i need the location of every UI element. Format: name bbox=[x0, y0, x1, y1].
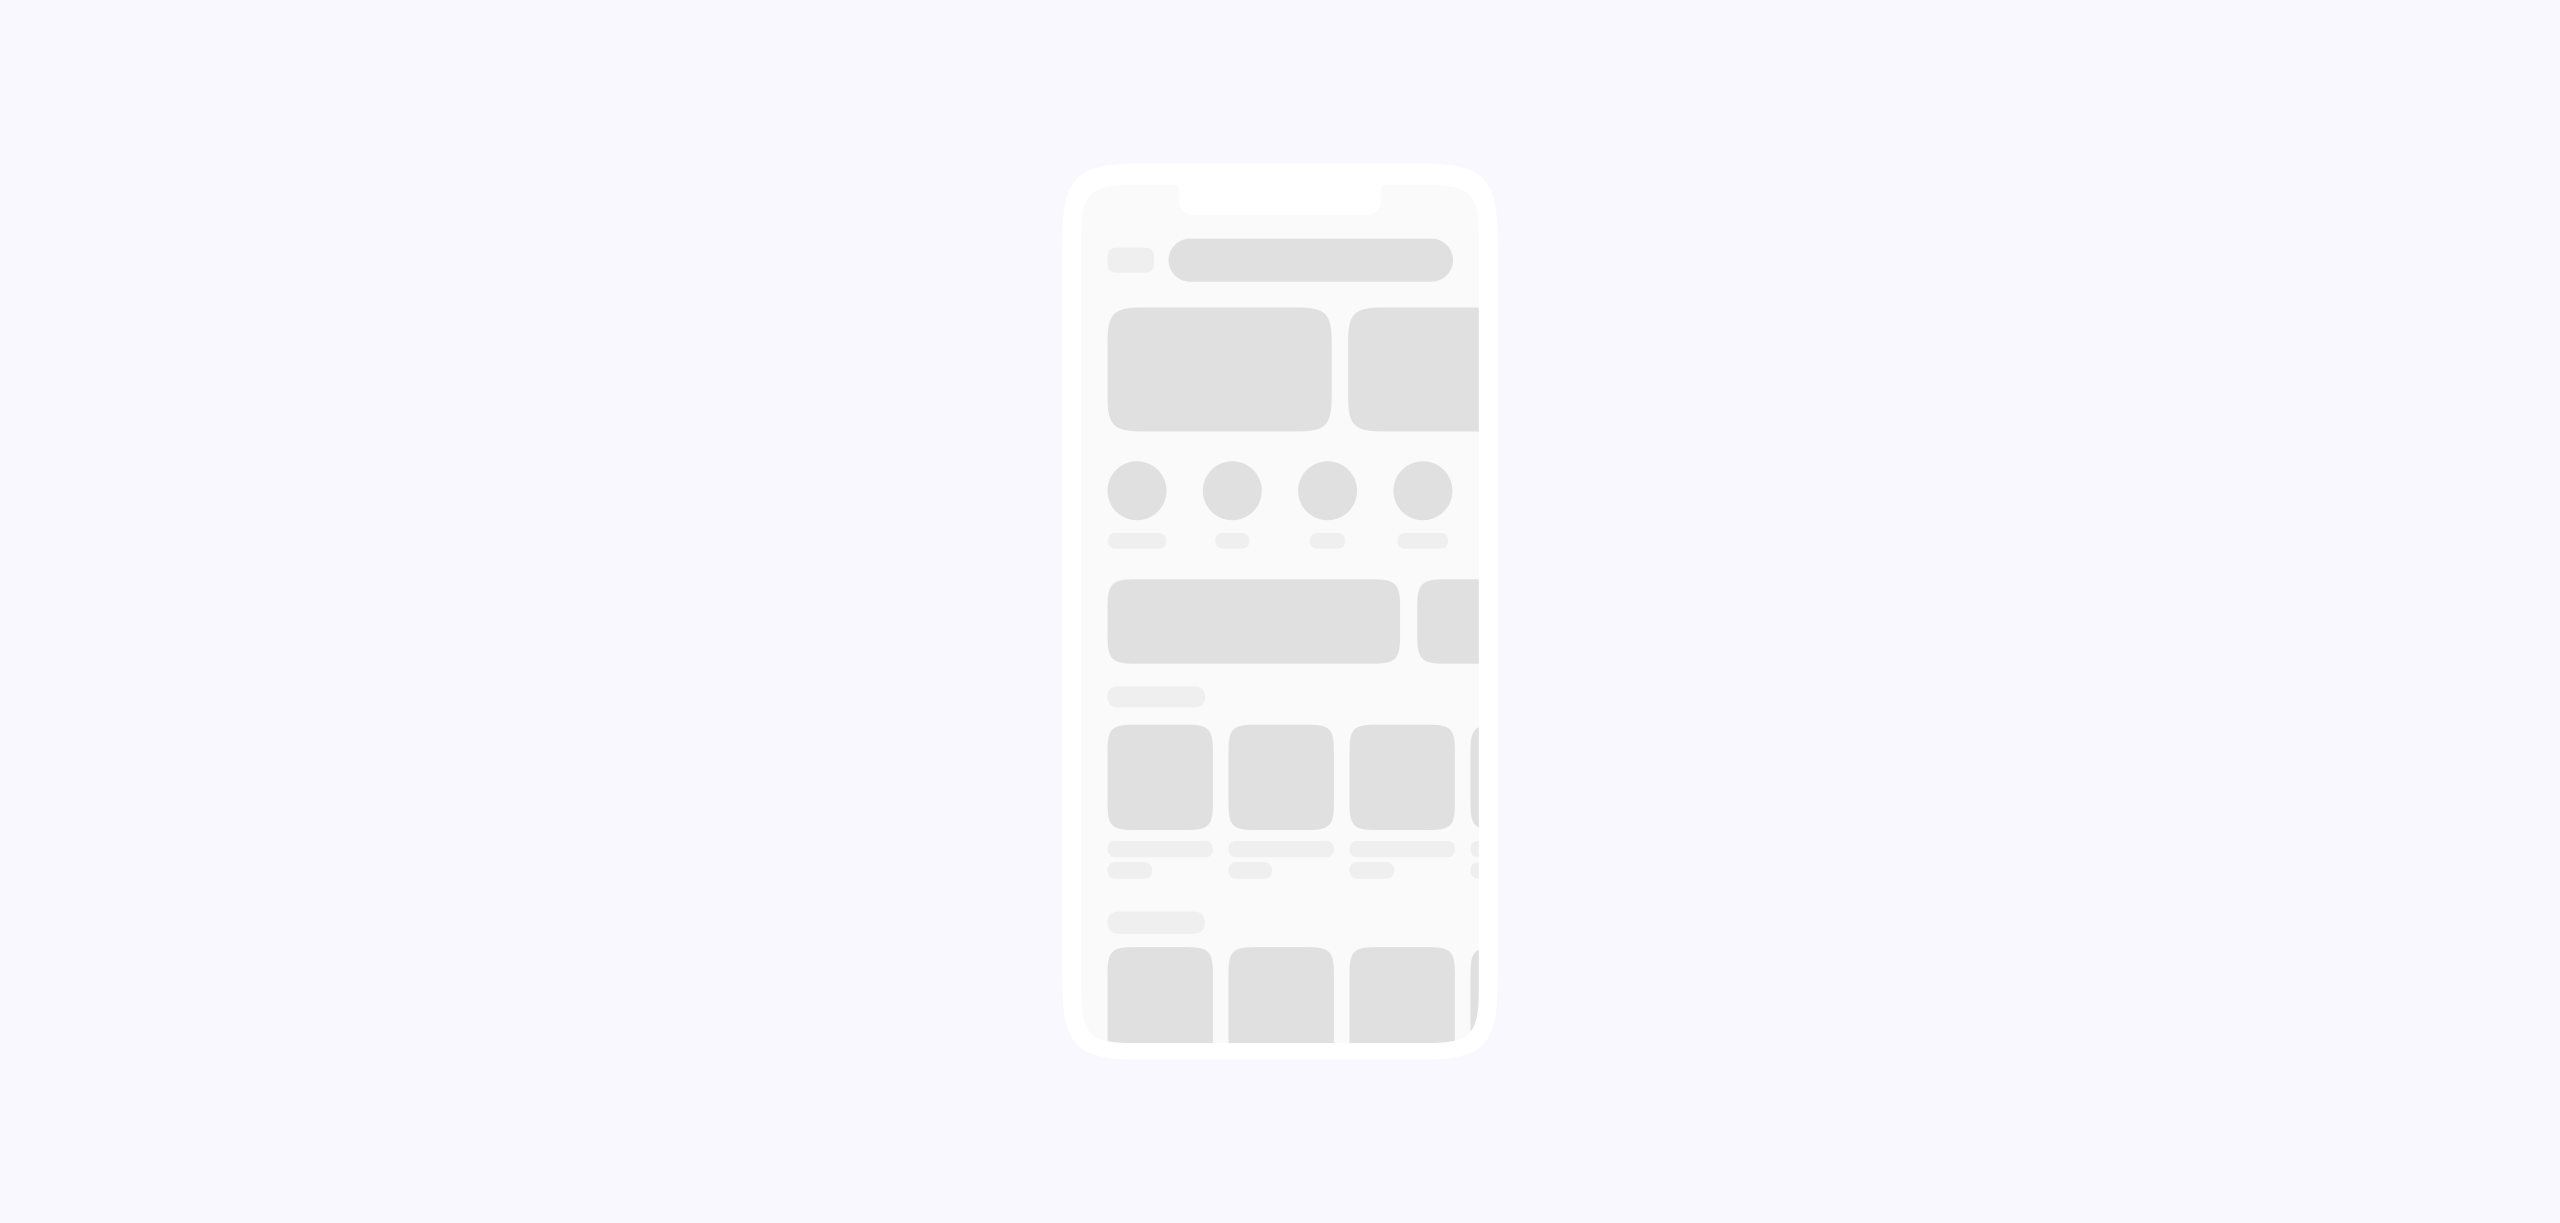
button[interactable]: Search bbox=[1168, 239, 1453, 282]
button[interactable]: Category bbox=[1203, 461, 1262, 549]
button[interactable]: Item bbox=[1470, 947, 1576, 1067]
button[interactable]: Category bbox=[1107, 461, 1166, 549]
button[interactable]: Category bbox=[1298, 461, 1357, 549]
button[interactable]: Category bbox=[1393, 461, 1452, 549]
button[interactable]: Item bbox=[1107, 947, 1213, 1067]
button[interactable]: Featured bbox=[1348, 307, 1570, 431]
button[interactable]: Featured bbox=[1107, 307, 1332, 431]
button[interactable]: Item bbox=[1349, 725, 1455, 879]
button[interactable]: Promotion bbox=[1417, 579, 1569, 664]
button[interactable]: Item bbox=[1228, 725, 1334, 879]
button[interactable]: Item bbox=[1470, 725, 1576, 879]
button[interactable]: Item bbox=[1228, 947, 1334, 1067]
button[interactable]: Item bbox=[1107, 725, 1213, 879]
button[interactable]: Item bbox=[1349, 947, 1455, 1067]
